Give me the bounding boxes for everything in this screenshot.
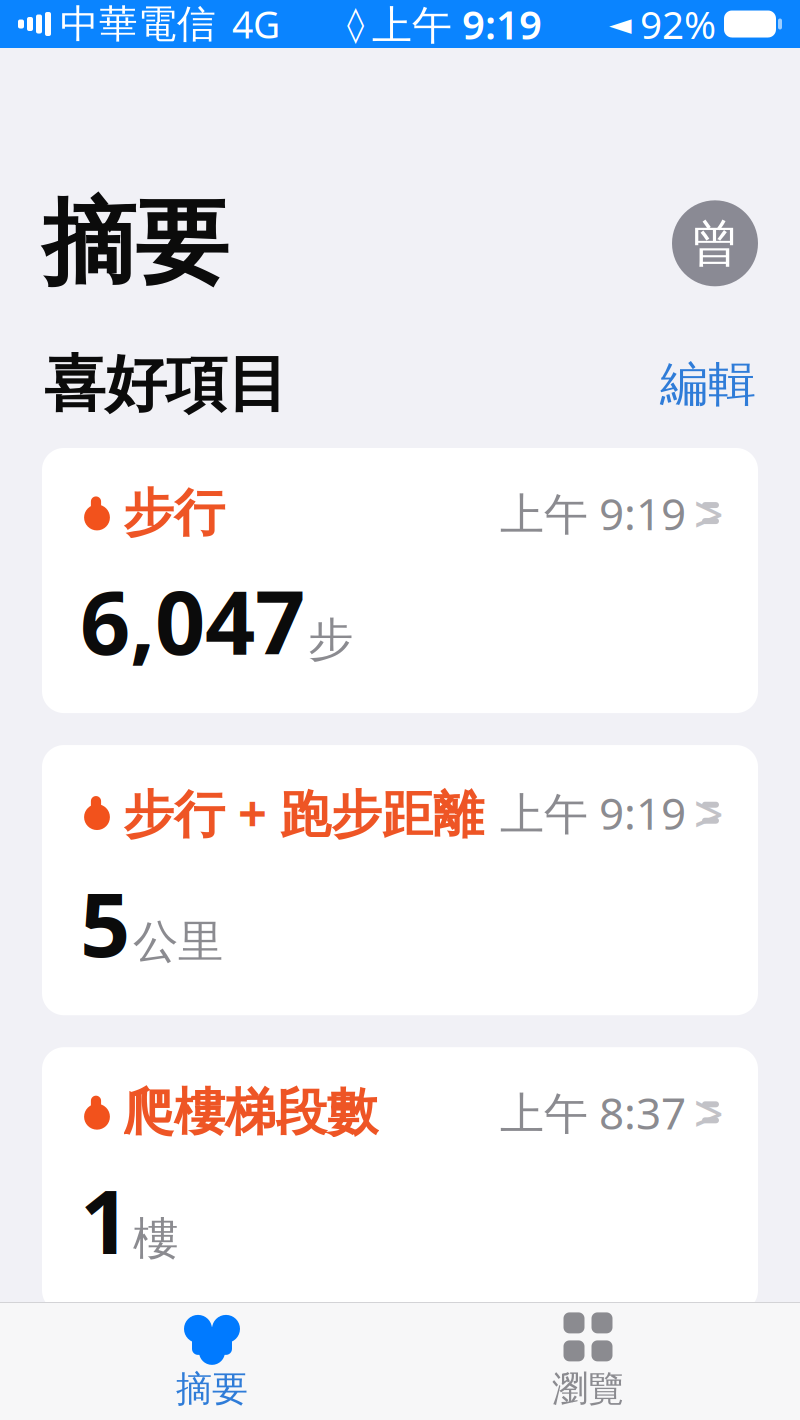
staticText: 上午 8:37 [500,1083,686,1141]
staticText: 1 [80,1161,130,1278]
staticText: 喜好項目 [44,347,288,422]
staticText: 爬樓梯段數 [123,1081,378,1143]
staticText: 6,047 [80,562,305,679]
staticText: ◄ [609,7,632,41]
staticText: > [693,478,724,548]
staticText: 上午 9:19 [372,0,542,50]
staticText: > [693,777,724,848]
staticText: 5 [80,864,130,981]
staticText: 睡眠 [123,1378,225,1420]
button[interactable]: 個人資料 [672,200,758,286]
staticText: 摘要 [42,186,228,301]
staticText: 92% [640,0,716,50]
button[interactable]: 睡眠 [42,1344,758,1420]
button[interactable]: 編輯 [660,355,756,414]
button[interactable]: 爬樓梯段數 [42,1047,758,1312]
staticText: 4G [232,0,280,49]
staticText: 公里 [133,914,223,970]
staticText: 上午 9:19 [500,484,686,542]
staticText: 瀏覽 [552,1367,624,1411]
button[interactable]: 瀏覽 [400,1303,776,1419]
staticText: 摘要 [176,1367,248,1411]
staticText: 樓 [133,1211,178,1267]
staticText: 步行 [123,482,225,544]
staticText: 曾 [690,213,739,274]
staticText: 編輯 [660,355,756,414]
staticText: 步行 + 跑步距離 [123,779,484,846]
button[interactable]: 步行 + 跑步距離 [42,745,758,1015]
staticText: 上午 9:19 [500,783,686,842]
staticText: 中華電信 [60,0,216,48]
staticText: 步 [308,612,353,667]
staticText: 昨天 [598,1382,686,1420]
button[interactable]: 步行 [42,448,758,713]
button[interactable]: 摘要 [24,1303,400,1419]
staticText: > [693,1077,724,1148]
staticText: ◊ [347,4,364,44]
